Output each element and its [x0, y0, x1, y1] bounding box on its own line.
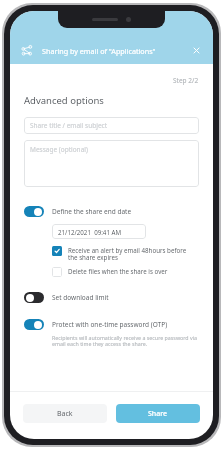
- button[interactable]: Share: [116, 404, 200, 423]
- button[interactable]: Share title / email subject: [24, 117, 199, 134]
- button[interactable]: Share: [21, 44, 34, 57]
- staticText: Delete files when the share is over: [68, 267, 168, 275]
- button[interactable]: Protect with one-time password (OTP): [24, 319, 44, 330]
- button[interactable]: Receive an alert by email 48hours before…: [52, 246, 199, 262]
- staticText: Define the share end date: [52, 207, 132, 216]
- staticText: Receive an alert by email 48hours before…: [68, 246, 187, 262]
- button[interactable]: Set download limit: [24, 292, 44, 303]
- button[interactable]: Delete files when the share is over: [52, 267, 199, 277]
- button[interactable]: Close: [191, 45, 202, 56]
- staticText: Set download limit: [52, 293, 109, 302]
- button[interactable]: 21/12/2021 09:41 AM: [52, 224, 146, 239]
- staticText: Protect with one-time password (OTP): [52, 320, 168, 329]
- staticText: Back: [57, 409, 73, 419]
- staticText: Step 2/2: [173, 76, 199, 85]
- button[interactable]: Back: [23, 404, 107, 423]
- staticText: Recipients will automatically receive a …: [52, 334, 198, 348]
- button[interactable]: Define the share end date: [24, 206, 44, 217]
- staticText: 21/12/2021 09:41 AM: [58, 228, 122, 236]
- staticText: Advanced options: [24, 94, 104, 107]
- button[interactable]: Message (optional): [24, 140, 199, 187]
- staticText: Sharing by email of "Applications": [42, 46, 156, 56]
- staticText: Share title / email subject: [30, 121, 108, 130]
- staticText: Share: [148, 409, 168, 419]
- staticText: Message (optional): [30, 145, 88, 154]
